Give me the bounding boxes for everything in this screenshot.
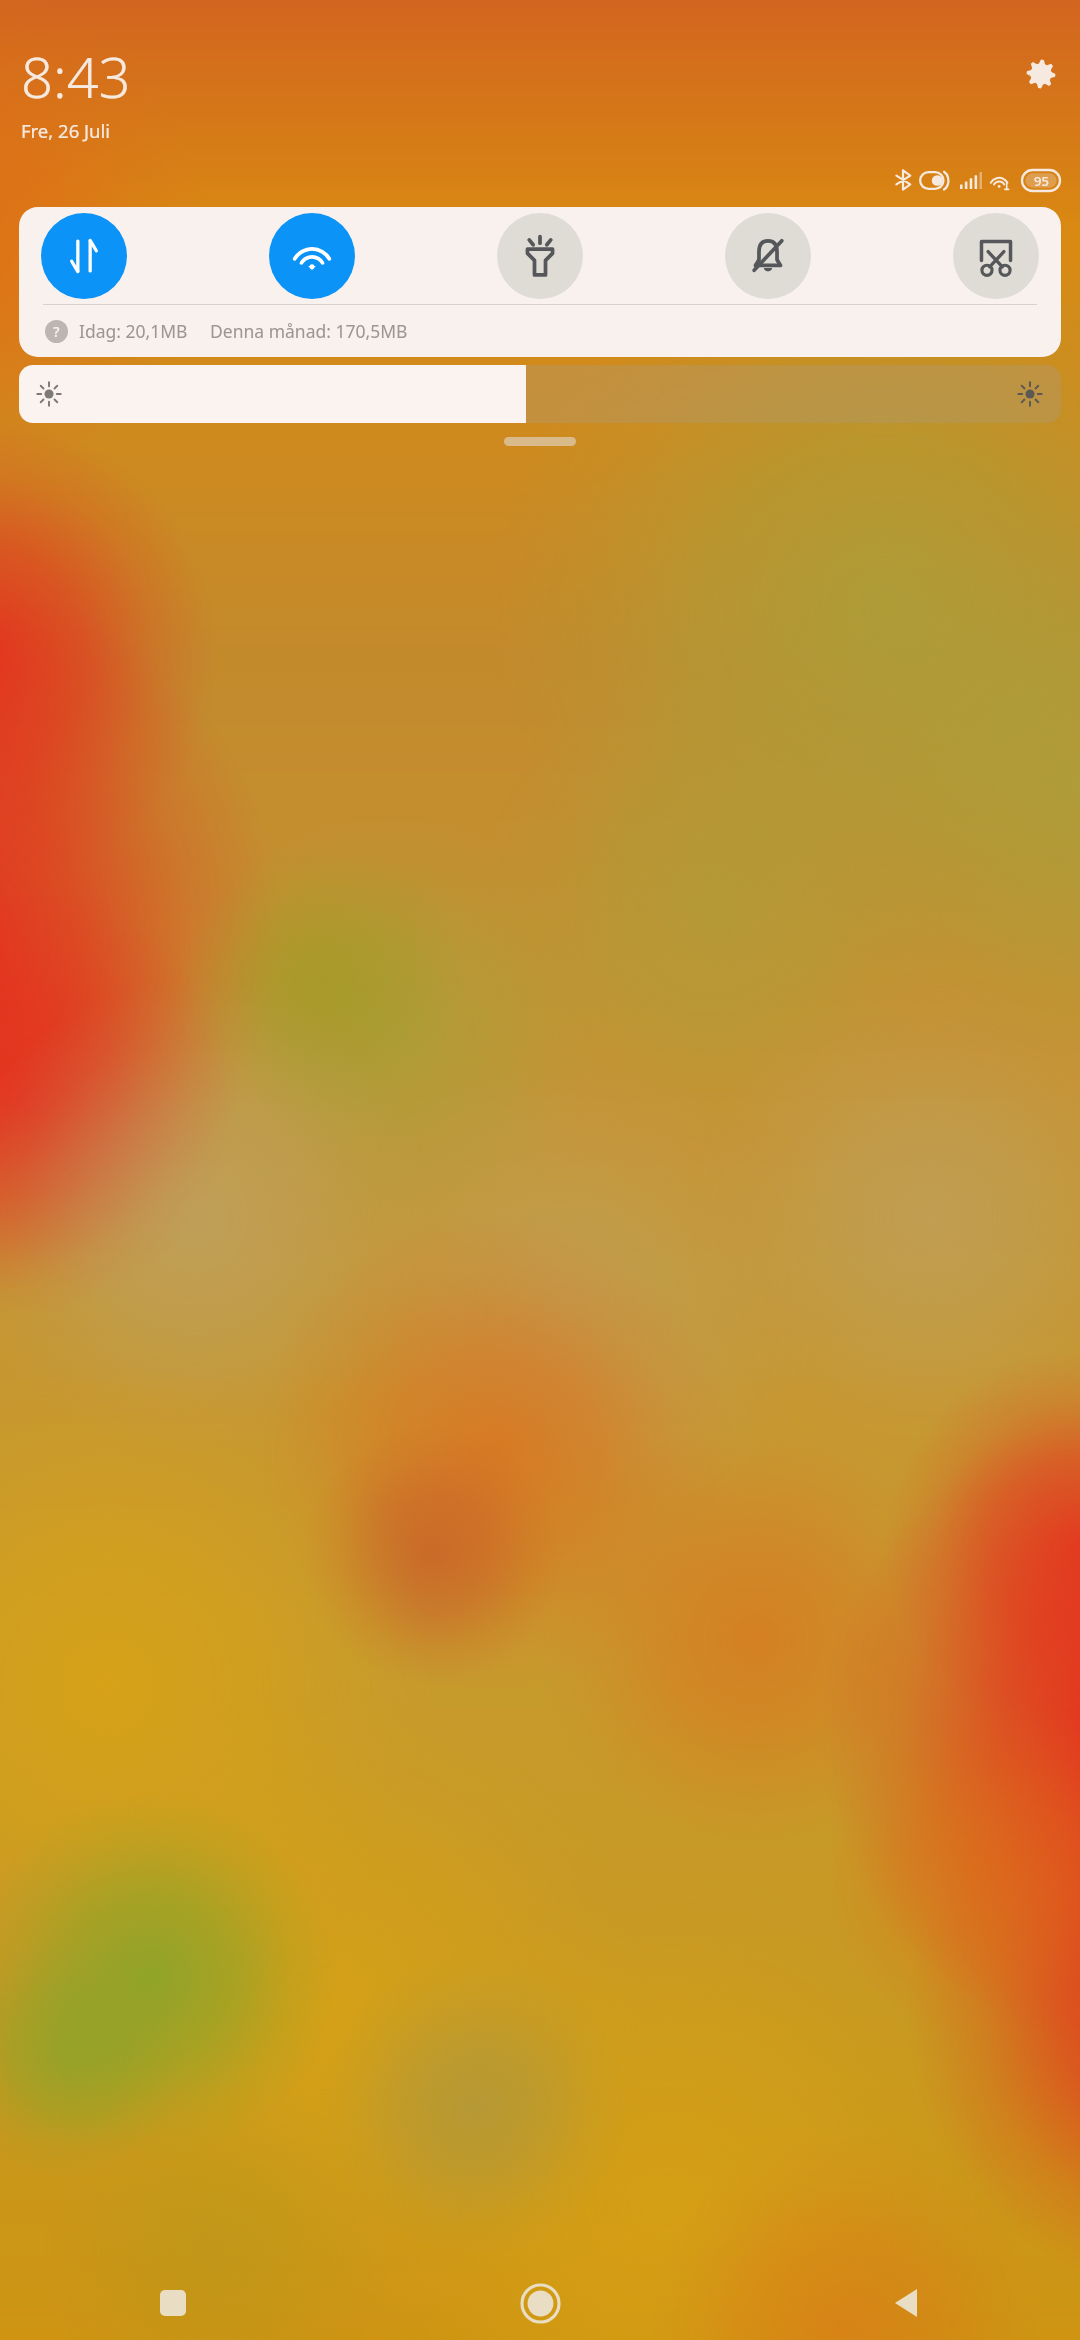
staticText: 95 [1034,172,1049,190]
button[interactable]: Silent mode [725,213,811,299]
staticText: 8:43 [21,38,131,114]
button[interactable]: ? [45,305,1061,357]
staticText: Denna månad: 170,5MB [210,319,408,343]
button[interactable]: Screenshot [953,213,1039,299]
staticText: Idag: 20,1MB [79,319,188,343]
button[interactable] [504,437,576,446]
button[interactable]: Recent apps [0,2266,360,2340]
button[interactable]: Brightness [19,365,1061,423]
button[interactable]: Home [360,2266,720,2340]
button[interactable]: Wi-Fi [269,213,355,299]
staticText: Fre, 26 Juli [21,118,111,143]
button[interactable]: Back [720,2266,1080,2340]
button[interactable]: Settings [1024,57,1058,91]
button[interactable]: Flashlight [497,213,583,299]
button[interactable]: Mobile data [41,213,127,299]
staticText: ? [53,322,60,341]
